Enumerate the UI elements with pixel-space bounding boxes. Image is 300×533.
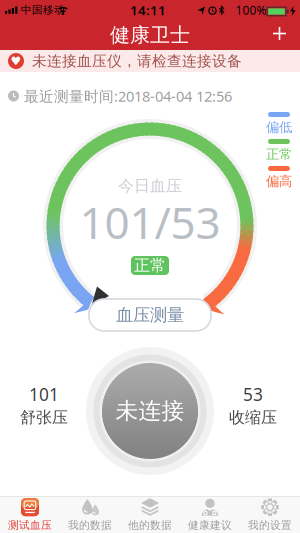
staticText: 100% bbox=[235, 2, 266, 18]
staticText: 偏高 bbox=[266, 173, 292, 189]
staticText: 14:11 bbox=[130, 1, 166, 19]
staticText: 血压测量 bbox=[116, 304, 184, 326]
staticText: 正常 bbox=[134, 256, 166, 275]
button[interactable]: 他的数据 bbox=[120, 497, 180, 533]
staticText: 53 bbox=[243, 383, 263, 406]
button[interactable]: ♥ bbox=[0, 50, 300, 72]
staticText: 101/53 bbox=[79, 193, 220, 251]
staticText: 舒张压 bbox=[20, 408, 68, 427]
staticText: 未连接 bbox=[115, 397, 184, 425]
button[interactable]: 健康建议 bbox=[180, 497, 240, 533]
staticText: 健康卫士 bbox=[110, 23, 190, 47]
button[interactable]: 我的数据 bbox=[60, 497, 120, 533]
staticText: ♥ bbox=[10, 54, 21, 68]
staticText: 收缩压 bbox=[229, 408, 277, 427]
button[interactable]: 我的设置 bbox=[240, 497, 300, 533]
button[interactable]: 未连接 bbox=[86, 347, 214, 475]
staticText: 101 bbox=[29, 383, 59, 406]
button[interactable]: 添加 bbox=[268, 22, 290, 44]
button[interactable]: 血压测量 bbox=[89, 299, 211, 331]
staticText: 中国移动 bbox=[21, 3, 65, 16]
staticText: 测试血压 bbox=[8, 519, 52, 532]
staticText: 偏低 bbox=[266, 119, 292, 135]
staticText: 他的数据 bbox=[128, 519, 172, 532]
staticText: 我的设置 bbox=[248, 519, 292, 532]
staticText: 未连接血压仪，请检查连接设备 bbox=[32, 52, 242, 70]
button[interactable]: 测试血压 bbox=[0, 497, 60, 533]
staticText: 健康建议 bbox=[188, 519, 232, 532]
staticText: 最近测量时间:2018-04-04 12:56 bbox=[24, 86, 232, 106]
staticText: 我的数据 bbox=[68, 519, 112, 532]
staticText: 今日血压 bbox=[118, 176, 182, 196]
staticText: 正常 bbox=[266, 146, 292, 162]
